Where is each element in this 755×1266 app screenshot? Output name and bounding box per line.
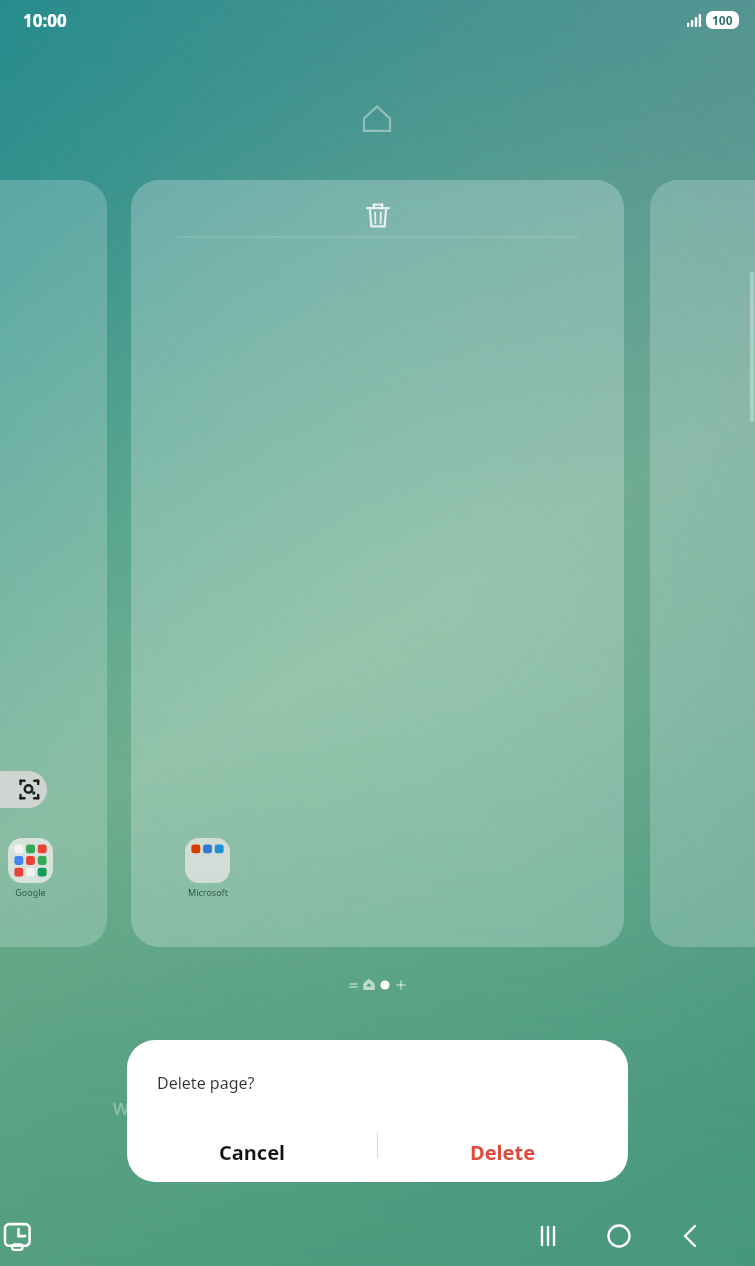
button[interactable] [650, 180, 755, 947]
staticText: Cancel [219, 1139, 286, 1166]
staticText: 10:00 [23, 9, 67, 32]
button[interactable]: Home [599, 1216, 639, 1256]
button[interactable]: Add page [393, 977, 409, 993]
staticText: Delete page? [157, 1072, 255, 1094]
button[interactable]: Delete [377, 1122, 628, 1182]
staticText: 100 [712, 12, 733, 28]
button[interactable]: Screen capture [0, 1218, 36, 1254]
button[interactable]: Google [7, 838, 54, 898]
button[interactable]: Back [670, 1216, 710, 1256]
button[interactable] [345, 977, 361, 993]
button[interactable]: Delete page [131, 180, 624, 947]
button[interactable]: Google Lens [0, 771, 47, 808]
staticText: Google [15, 886, 46, 898]
button[interactable] [0, 180, 107, 947]
button[interactable]: Cancel [127, 1122, 377, 1182]
button[interactable]: Delete page [358, 196, 398, 236]
staticText: W [113, 1097, 129, 1120]
button[interactable] [377, 977, 393, 993]
button[interactable]: Microsoft [184, 838, 231, 898]
button[interactable] [361, 977, 377, 993]
staticText: Microsoft [188, 886, 228, 898]
staticText: Delete [470, 1139, 536, 1166]
button[interactable]: Recent apps [528, 1216, 568, 1256]
